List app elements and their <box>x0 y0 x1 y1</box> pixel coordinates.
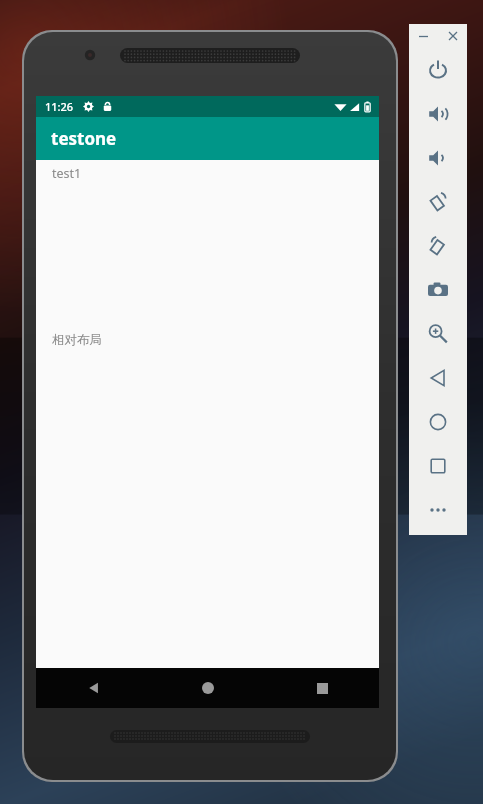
button[interactable]: Rotate left <box>409 180 467 224</box>
button[interactable]: Volume down <box>409 136 467 180</box>
button[interactable]: More <box>409 488 467 532</box>
button[interactable]: Recent apps <box>409 444 467 488</box>
staticText: test1 <box>52 165 82 182</box>
button[interactable]: Recent apps <box>265 668 379 708</box>
button[interactable]: Rotate right <box>409 224 467 268</box>
staticText: 相对布局 <box>52 332 102 348</box>
button[interactable]: Back <box>409 356 467 400</box>
button[interactable]: Zoom <box>409 312 467 356</box>
button[interactable]: testone <box>36 117 379 160</box>
button[interactable]: Take screenshot <box>409 268 467 312</box>
button[interactable]: Power <box>409 48 467 92</box>
button[interactable]: Back <box>36 668 151 708</box>
button[interactable]: Home <box>409 400 467 444</box>
button[interactable]: Home <box>151 668 265 708</box>
staticText: 11:26 <box>45 99 74 114</box>
button[interactable]: Minimise <box>413 26 433 46</box>
button[interactable]: Volume up <box>409 92 467 136</box>
staticText: testone <box>51 127 117 150</box>
button[interactable]: Close <box>443 26 463 46</box>
